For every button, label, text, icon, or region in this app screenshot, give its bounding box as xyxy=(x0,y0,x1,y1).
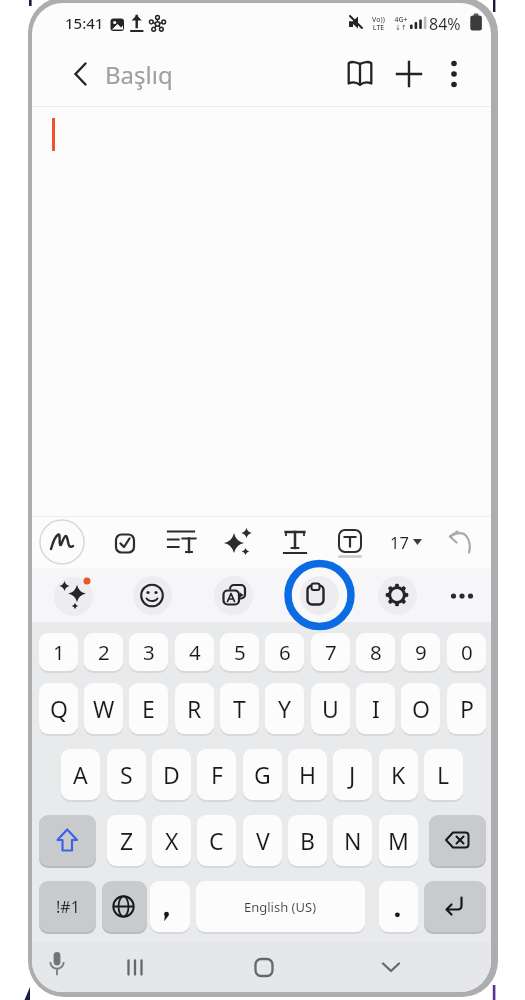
staticText: V xyxy=(256,825,270,856)
button[interactable]: O xyxy=(401,683,440,734)
button[interactable] xyxy=(340,56,380,92)
staticText: Y xyxy=(278,693,292,724)
button[interactable]: K xyxy=(379,749,418,800)
button[interactable]: S xyxy=(107,749,146,800)
button[interactable]: U xyxy=(311,683,350,734)
staticText: 1 xyxy=(53,638,65,666)
button[interactable]: F xyxy=(197,749,236,800)
button[interactable]: P xyxy=(447,683,486,734)
staticText: 2 xyxy=(98,638,110,666)
button[interactable] xyxy=(117,950,153,986)
staticText: D xyxy=(163,759,180,790)
button[interactable] xyxy=(38,518,86,565)
button[interactable]: C xyxy=(197,815,236,866)
staticText: Q xyxy=(50,693,68,724)
button[interactable]: !#1 xyxy=(39,881,96,932)
button[interactable]: D xyxy=(152,749,191,800)
button[interactable] xyxy=(436,56,472,92)
button[interactable] xyxy=(40,950,76,986)
button[interactable]: N xyxy=(333,815,372,866)
button[interactable]: 0 xyxy=(447,633,486,671)
button[interactable] xyxy=(379,518,427,565)
button[interactable]: Q xyxy=(39,683,78,734)
button[interactable]: 1 xyxy=(39,633,78,671)
button[interactable]: T xyxy=(220,683,259,734)
button[interactable]: L xyxy=(424,749,463,800)
button[interactable] xyxy=(246,950,282,986)
staticText: English (US) xyxy=(244,898,317,916)
staticText: H xyxy=(299,759,317,790)
button[interactable] xyxy=(133,576,172,615)
staticText: 4G+ ↓↑ xyxy=(394,15,408,32)
button[interactable] xyxy=(378,576,417,615)
staticText: 8 xyxy=(370,638,382,666)
button[interactable]: G xyxy=(243,749,282,800)
staticText: U xyxy=(322,693,339,724)
button[interactable]: X xyxy=(152,815,191,866)
staticText: E xyxy=(142,693,155,724)
button[interactable]: 3 xyxy=(129,633,168,671)
button[interactable]: A xyxy=(61,749,100,800)
button[interactable]: 8 xyxy=(356,633,395,671)
staticText: G xyxy=(254,759,271,790)
button[interactable]: M xyxy=(379,815,418,866)
button[interactable] xyxy=(300,576,339,615)
button[interactable]: H xyxy=(288,749,327,800)
staticText: 3 xyxy=(143,638,155,666)
button[interactable]: W xyxy=(84,683,123,734)
button[interactable] xyxy=(429,815,486,866)
button[interactable] xyxy=(102,881,147,932)
button[interactable] xyxy=(54,577,93,616)
staticText: N xyxy=(344,825,362,856)
button[interactable] xyxy=(379,881,418,932)
staticText: F xyxy=(211,759,223,790)
button[interactable] xyxy=(373,950,409,986)
staticText: A xyxy=(73,759,88,790)
button[interactable] xyxy=(60,56,100,92)
button[interactable]: 9 xyxy=(401,633,440,671)
staticText: I xyxy=(372,693,380,724)
button[interactable]: 4 xyxy=(175,633,214,671)
button[interactable]: I xyxy=(356,683,395,734)
button[interactable] xyxy=(150,881,190,932)
button[interactable] xyxy=(271,518,319,565)
button[interactable]: J xyxy=(333,749,372,800)
staticText: K xyxy=(391,759,406,790)
button[interactable] xyxy=(444,578,482,614)
button[interactable] xyxy=(389,56,429,92)
button[interactable]: 7 xyxy=(311,633,350,671)
button[interactable]: B xyxy=(288,815,327,866)
button[interactable] xyxy=(326,518,374,565)
button[interactable] xyxy=(196,881,365,932)
button[interactable] xyxy=(157,518,205,565)
staticText: 4 xyxy=(189,638,201,666)
button[interactable]: E xyxy=(129,683,168,734)
button[interactable] xyxy=(101,518,149,565)
button[interactable] xyxy=(215,518,263,565)
staticText: R xyxy=(187,693,202,724)
staticText: 9 xyxy=(415,638,427,666)
button[interactable]: 2 xyxy=(84,633,123,671)
button[interactable]: 6 xyxy=(265,633,304,671)
staticText: L xyxy=(437,759,450,790)
staticText: 84% xyxy=(429,13,461,33)
button[interactable] xyxy=(424,881,486,932)
button[interactable]: Z xyxy=(107,815,146,866)
staticText: 5 xyxy=(234,638,246,666)
button[interactable]: Y xyxy=(265,683,304,734)
button[interactable] xyxy=(39,815,96,866)
button[interactable]: 5 xyxy=(220,633,259,671)
staticText: T xyxy=(233,693,246,724)
button[interactable] xyxy=(438,518,486,565)
staticText: W xyxy=(93,693,115,724)
staticText: S xyxy=(120,759,133,790)
button[interactable]: R xyxy=(175,683,214,734)
staticText: M xyxy=(388,825,409,856)
staticText: 6 xyxy=(279,638,291,666)
staticText: J xyxy=(349,759,356,790)
staticText: Vo)) LTE xyxy=(372,15,385,32)
button[interactable]: V xyxy=(243,815,282,866)
staticText: 0 xyxy=(461,638,473,666)
staticText: P xyxy=(460,693,474,724)
button[interactable] xyxy=(214,576,253,615)
